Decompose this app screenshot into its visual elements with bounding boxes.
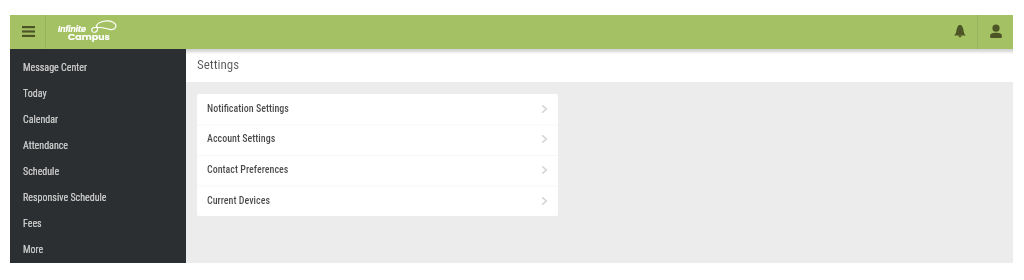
button[interactable]: More (10, 237, 186, 263)
staticText: Infinite (58, 24, 87, 35)
button[interactable]: Responsive Schedule (10, 185, 186, 211)
button[interactable]: Today (10, 81, 186, 107)
staticText: Contact Preferences (207, 164, 542, 176)
staticText: Attendance (23, 140, 69, 152)
staticText: Campus (68, 30, 110, 43)
button[interactable]: Current Devices (197, 185, 558, 216)
button[interactable]: Calendar (10, 107, 186, 133)
staticText: Calendar (23, 114, 59, 126)
staticText: More (23, 244, 44, 256)
staticText: Settings (197, 57, 240, 72)
staticText: Current Devices (207, 195, 542, 207)
button[interactable]: Account (978, 15, 1013, 49)
staticText: Message Center (23, 62, 87, 74)
staticText: Account Settings (207, 133, 542, 145)
staticText: Responsive Schedule (23, 192, 107, 204)
staticText: Schedule (23, 166, 60, 178)
button[interactable]: Attendance (10, 133, 186, 159)
button[interactable]: Notifications (942, 15, 977, 49)
button[interactable]: Contact Preferences (197, 154, 558, 185)
staticText: Today (23, 88, 47, 100)
button[interactable]: Open navigation menu (10, 15, 45, 49)
staticText: Fees (23, 218, 42, 230)
button[interactable]: Message Center (10, 55, 186, 81)
button[interactable]: Fees (10, 211, 186, 237)
button[interactable]: Notification Settings (197, 94, 558, 124)
staticText: Notification Settings (207, 103, 542, 115)
button[interactable]: Account Settings (197, 124, 558, 154)
button[interactable]: Schedule (10, 159, 186, 185)
